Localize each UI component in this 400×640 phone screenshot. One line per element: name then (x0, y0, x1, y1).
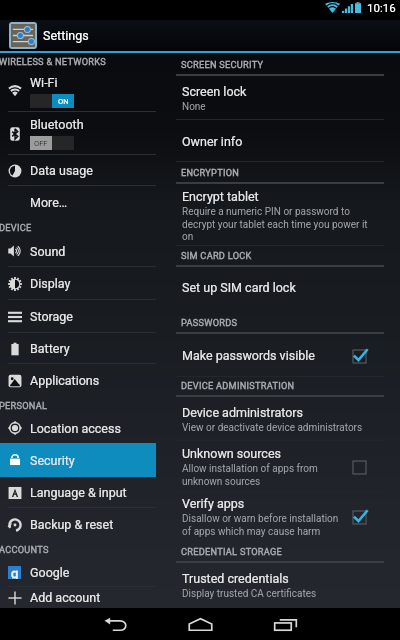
staticText: Unknown sources (182, 446, 281, 461)
staticText: g (11, 566, 19, 579)
staticText: Security (30, 453, 75, 468)
staticText: SCREEN SECURITY (181, 59, 264, 70)
button[interactable]: Backup & reset (0, 508, 156, 541)
button[interactable]: Unknown sources (176, 441, 400, 492)
staticText: Allow installation of apps from unknown … (182, 463, 344, 487)
staticText: None (182, 101, 206, 113)
staticText: Encrypt tablet (182, 189, 259, 204)
staticText: Set up SIM card lock (182, 280, 296, 295)
button[interactable]: Display (0, 267, 156, 300)
staticText: Make passwords visible (182, 348, 315, 363)
button[interactable]: Owner info (176, 120, 400, 162)
button[interactable]: Set up SIM card lock (176, 267, 400, 308)
button[interactable]: g (0, 557, 156, 587)
button[interactable]: Wi-Fi (0, 70, 176, 112)
staticText: Require a numeric PIN or password to dec… (182, 206, 374, 242)
button[interactable]: Storage (0, 300, 156, 333)
button[interactable]: Screen lock (176, 76, 400, 120)
staticText: Battery (30, 341, 70, 356)
staticText: ENCRYPTION (181, 167, 240, 178)
staticText: Location access (30, 421, 121, 436)
staticText: Settings (43, 28, 89, 43)
button[interactable]: Encrypt tablet (176, 184, 400, 246)
button[interactable]: Applications (0, 364, 156, 397)
button[interactable]: Device administrators (176, 397, 400, 441)
button[interactable]: Location access (0, 413, 156, 443)
staticText: Google (30, 565, 70, 580)
staticText: Storage (30, 309, 73, 324)
button[interactable]: ON (30, 94, 74, 108)
staticText: View or deactivate device administrators (182, 422, 363, 434)
staticText: Device administrators (182, 405, 304, 420)
button[interactable]: Unknown sources (344, 456, 374, 478)
button[interactable]: Settings (0, 20, 400, 51)
staticText: Owner info (182, 134, 243, 149)
button[interactable]: Add account (0, 587, 156, 608)
button[interactable]: Bluetooth (0, 112, 176, 155)
staticText: SIM CARD LOCK (181, 250, 252, 261)
button[interactable]: Security (0, 443, 156, 477)
staticText: OFF (34, 139, 48, 148)
staticText: Disallow or warn before installation of … (182, 513, 344, 537)
staticText: PERSONAL (0, 400, 48, 411)
button[interactable]: Battery (0, 333, 156, 364)
button[interactable]: Language & input (0, 477, 156, 508)
staticText: ACCOUNTS (0, 544, 49, 555)
button[interactable]: Back (95, 608, 135, 640)
staticText: Verify apps (182, 496, 245, 511)
staticText: Screen lock (182, 84, 247, 99)
staticText: Language & input (30, 485, 127, 500)
button[interactable]: OFF (30, 136, 74, 150)
staticText: Applications (30, 373, 100, 388)
button[interactable]: Verify apps (344, 506, 374, 528)
staticText: 10:16 (367, 1, 396, 14)
staticText: Bluetooth (30, 117, 84, 132)
staticText: Wi-Fi (30, 75, 58, 90)
staticText: Add account (30, 590, 101, 605)
staticText: Backup & reset (30, 517, 114, 532)
staticText: WIRELESS & NETWORKS (0, 56, 106, 67)
staticText: CREDENTIAL STORAGE (181, 546, 283, 557)
button[interactable]: Home (180, 608, 220, 640)
staticText: DEVICE (0, 222, 32, 233)
button[interactable]: Recent apps (265, 608, 305, 640)
staticText: Trusted credentials (182, 571, 289, 586)
staticText: DEVICE ADMINISTRATION (181, 380, 295, 391)
staticText: Sound (30, 244, 66, 259)
button[interactable]: Make passwords visible (176, 334, 400, 377)
button[interactable]: Data usage (0, 155, 156, 186)
staticText: ON (58, 97, 69, 106)
staticText: Display (30, 276, 71, 291)
button[interactable]: Verify apps (176, 492, 400, 541)
button[interactable]: Make passwords visible (344, 345, 374, 367)
staticText: Display trusted CA certificates (182, 588, 317, 600)
button[interactable]: Trusted credentials (176, 563, 400, 608)
button[interactable]: More… (0, 186, 156, 219)
staticText: Data usage (30, 163, 93, 178)
staticText: PASSWORDS (181, 317, 238, 328)
staticText: More… (30, 195, 68, 210)
button[interactable]: Sound (0, 235, 156, 267)
